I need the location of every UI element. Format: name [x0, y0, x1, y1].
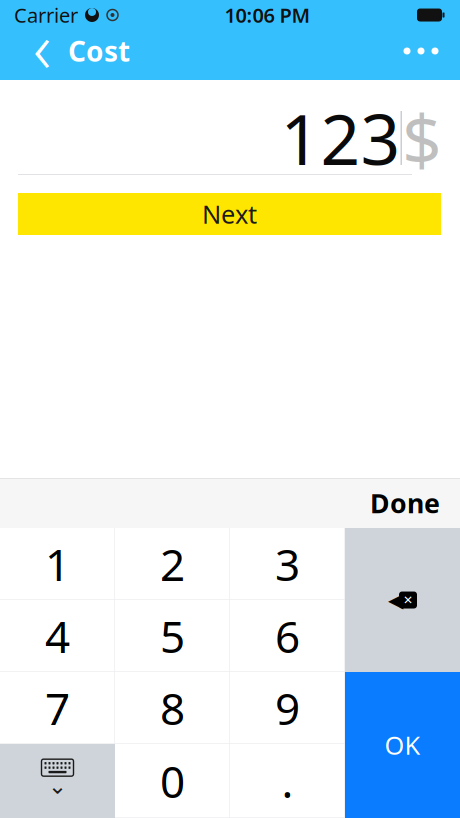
staticText: 10:06 PM: [224, 2, 310, 28]
staticText: ◀: [388, 589, 403, 611]
button[interactable]: OK: [345, 672, 460, 818]
staticText: 6: [275, 607, 300, 665]
staticText: Cost: [68, 32, 130, 70]
staticText: ‹: [33, 0, 51, 92]
button[interactable]: 9: [230, 672, 345, 744]
button[interactable]: Hide keyboard: [0, 744, 115, 818]
staticText: Next: [202, 197, 257, 231]
staticText: ⌄: [48, 773, 67, 799]
staticText: ✕: [403, 593, 413, 607]
staticText: 0: [160, 752, 185, 810]
staticText: OK: [384, 728, 420, 762]
button[interactable]: Next: [18, 193, 441, 235]
button[interactable]: 4: [0, 600, 115, 672]
staticText: 2: [160, 535, 185, 593]
staticText: $: [402, 92, 442, 184]
staticText: 4: [45, 607, 70, 665]
button[interactable]: 3: [230, 528, 345, 600]
staticText: Carrier: [14, 2, 78, 28]
button[interactable]: 0: [115, 744, 230, 818]
staticText: 8: [160, 679, 185, 737]
staticText: 9: [275, 679, 300, 737]
staticText: 7: [45, 679, 70, 737]
staticText: Done: [370, 485, 440, 521]
staticText: 123: [280, 92, 400, 184]
button[interactable]: 5: [115, 600, 230, 672]
staticText: 1: [45, 535, 70, 593]
button[interactable]: 1: [0, 528, 115, 600]
button[interactable]: Done: [358, 477, 452, 529]
staticText: 3: [275, 535, 300, 593]
button[interactable]: 6: [230, 600, 345, 672]
button[interactable]: 8: [115, 672, 230, 744]
staticText: 5: [160, 607, 185, 665]
button[interactable]: 7: [0, 672, 115, 744]
button[interactable]: 2: [115, 528, 230, 600]
staticText: .: [281, 752, 293, 810]
button[interactable]: .: [230, 744, 345, 818]
button[interactable]: More options: [390, 27, 452, 75]
button[interactable]: Delete: [345, 528, 460, 672]
button[interactable]: Back: [16, 27, 68, 75]
